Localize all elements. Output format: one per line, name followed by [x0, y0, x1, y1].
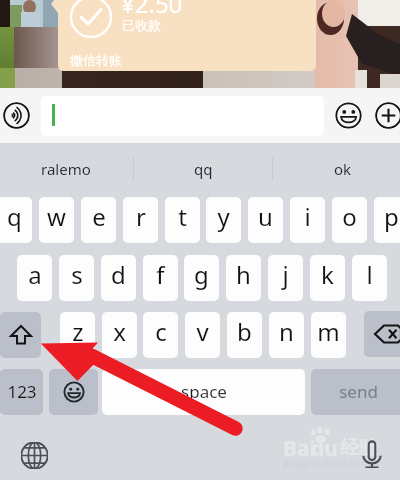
staticText: i: [304, 200, 311, 233]
button[interactable]: Switch keyboard: [21, 442, 48, 469]
staticText: t: [178, 200, 187, 233]
staticText: 经验: [340, 436, 378, 460]
button[interactable]: n: [269, 312, 304, 358]
staticText: space: [181, 380, 227, 403]
staticText: u: [258, 200, 273, 233]
staticText: g: [194, 258, 209, 291]
staticText: send: [339, 380, 378, 403]
button[interactable]: a: [17, 255, 52, 301]
button[interactable]: t: [165, 197, 200, 243]
button[interactable]: Voice input: [358, 440, 386, 468]
staticText: x: [113, 315, 126, 348]
button[interactable]: r: [123, 197, 158, 243]
button[interactable]: j: [268, 255, 303, 301]
button[interactable]: w: [39, 197, 74, 243]
button[interactable]: Voice message: [3, 102, 30, 129]
button[interactable]: e: [81, 197, 116, 243]
button[interactable]: u: [248, 197, 283, 243]
staticText: b: [237, 315, 252, 348]
button[interactable]: send: [311, 369, 400, 415]
staticText: v: [196, 315, 209, 348]
staticText: h: [236, 258, 251, 291]
button[interactable]: k: [310, 255, 345, 301]
button[interactable]: i: [290, 197, 325, 243]
staticText: l: [366, 258, 373, 291]
staticText: r: [136, 200, 146, 233]
staticText: qq: [194, 159, 213, 179]
button[interactable]: qq: [163, 150, 243, 188]
button[interactable]: l: [352, 255, 387, 301]
staticText: z: [72, 315, 84, 348]
button[interactable]: Backspace: [364, 311, 400, 357]
staticText: ¥2.50: [121, 0, 183, 20]
button[interactable]: o: [332, 197, 367, 243]
button[interactable]: g: [184, 255, 219, 301]
staticText: y: [217, 200, 230, 233]
staticText: e: [92, 200, 106, 233]
button[interactable]: c: [143, 312, 178, 358]
staticText: 已收款: [122, 17, 161, 33]
staticText: jingyan.baidu.com: [283, 455, 379, 470]
staticText: Bai: [283, 434, 316, 463]
staticText: du: [311, 434, 338, 463]
button[interactable]: Emoji keyboard: [49, 369, 98, 415]
button[interactable]: q: [0, 197, 32, 243]
staticText: k: [321, 258, 334, 291]
staticText: q: [7, 200, 22, 233]
button[interactable]: y: [206, 197, 241, 243]
button[interactable]: f: [143, 255, 178, 301]
button[interactable]: h: [226, 255, 261, 301]
staticText: w: [47, 200, 66, 233]
staticText: 微信转账: [70, 52, 122, 68]
button[interactable]: [41, 96, 324, 136]
button[interactable]: More options: [375, 102, 400, 129]
staticText: c: [155, 315, 167, 348]
button[interactable]: m: [311, 312, 346, 358]
button[interactable]: ralemo: [23, 150, 109, 188]
button[interactable]: d: [101, 255, 136, 301]
staticText: m: [317, 315, 340, 348]
button[interactable]: z: [60, 312, 95, 358]
button[interactable]: v: [185, 312, 220, 358]
button[interactable]: ok: [303, 150, 383, 188]
staticText: s: [71, 258, 83, 291]
staticText: d: [111, 258, 126, 291]
button[interactable]: s: [59, 255, 94, 301]
staticText: a: [28, 258, 42, 291]
staticText: ralemo: [41, 159, 91, 179]
staticText: o: [342, 200, 357, 233]
staticText: f: [156, 258, 165, 291]
staticText: p: [384, 200, 399, 233]
button[interactable]: Shift: [0, 312, 41, 358]
button[interactable]: p: [374, 197, 400, 243]
staticText: j: [282, 258, 289, 291]
button[interactable]: x: [102, 312, 137, 358]
button[interactable]: 123: [0, 369, 43, 415]
button[interactable]: Emoji: [335, 102, 362, 129]
staticText: ok: [334, 159, 352, 179]
button[interactable]: space: [102, 369, 305, 415]
staticText: 123: [7, 380, 37, 403]
button[interactable]: b: [227, 312, 262, 358]
staticText: n: [279, 315, 294, 348]
